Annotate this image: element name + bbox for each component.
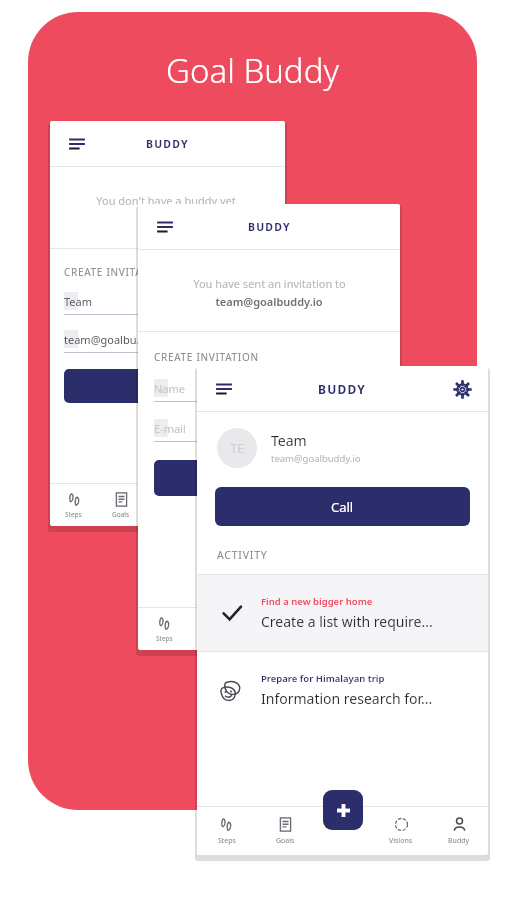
button[interactable]: Menu [66, 133, 88, 155]
staticText: team@goalbu... [64, 332, 146, 347]
staticText: Invite a ... [143, 211, 193, 226]
staticText: BUDDY [318, 381, 367, 397]
staticText: Visions [389, 836, 413, 846]
staticText: Find a new bigger home [261, 595, 373, 608]
staticText: team@goalbuddy.io [215, 294, 323, 309]
staticText: TE [230, 439, 245, 457]
button[interactable]: Menu [154, 216, 176, 238]
staticText: Goals [112, 510, 130, 519]
button[interactable]: TE [217, 428, 468, 468]
button[interactable] [154, 460, 384, 496]
staticText: CREATE INVITATION [154, 350, 259, 364]
button[interactable] [64, 369, 271, 403]
staticText: BUDDY [248, 220, 291, 234]
staticText: E-mail [154, 421, 186, 436]
button[interactable]: Goals [256, 807, 314, 855]
button[interactable]: Buddy [430, 807, 488, 855]
button[interactable]: Goals [97, 484, 144, 526]
staticText: Call [331, 498, 354, 516]
staticText: Buddy [448, 836, 470, 846]
button[interactable]: Steps [50, 484, 97, 526]
staticText: Team [64, 294, 93, 309]
staticText: Goals [276, 836, 295, 846]
staticText: ACTIVITY [217, 548, 268, 562]
button[interactable]: Steps [138, 608, 190, 650]
staticText: CREATE INVITATION [64, 265, 169, 279]
button[interactable]: Menu [213, 378, 235, 400]
button[interactable]: Prepare for Himalayan trip [217, 652, 468, 728]
staticText: team@goalbuddy.io [271, 452, 361, 465]
button[interactable]: Add [323, 790, 363, 830]
button[interactable]: Call [215, 487, 470, 526]
staticText: Steps [156, 634, 173, 643]
staticText: BUDDY [146, 137, 189, 151]
staticText: Steps [218, 836, 236, 846]
staticText: Prepare for Himalayan trip [261, 672, 385, 685]
staticText: You don't have a buddy yet. [96, 193, 239, 208]
button[interactable]: Find a new bigger home [217, 575, 468, 651]
button[interactable]: Visions [372, 807, 430, 855]
staticText: Name [154, 381, 186, 396]
button[interactable]: Steps [197, 807, 256, 855]
staticText: Goal Buddy [166, 48, 339, 93]
staticText: Information research for... [261, 689, 433, 708]
staticText: Team [271, 431, 307, 450]
staticText: You have sent an invitation to [193, 276, 346, 291]
staticText: Steps [65, 510, 82, 519]
button[interactable]: Settings [452, 379, 472, 399]
staticText: Create a list with require... [261, 612, 433, 631]
